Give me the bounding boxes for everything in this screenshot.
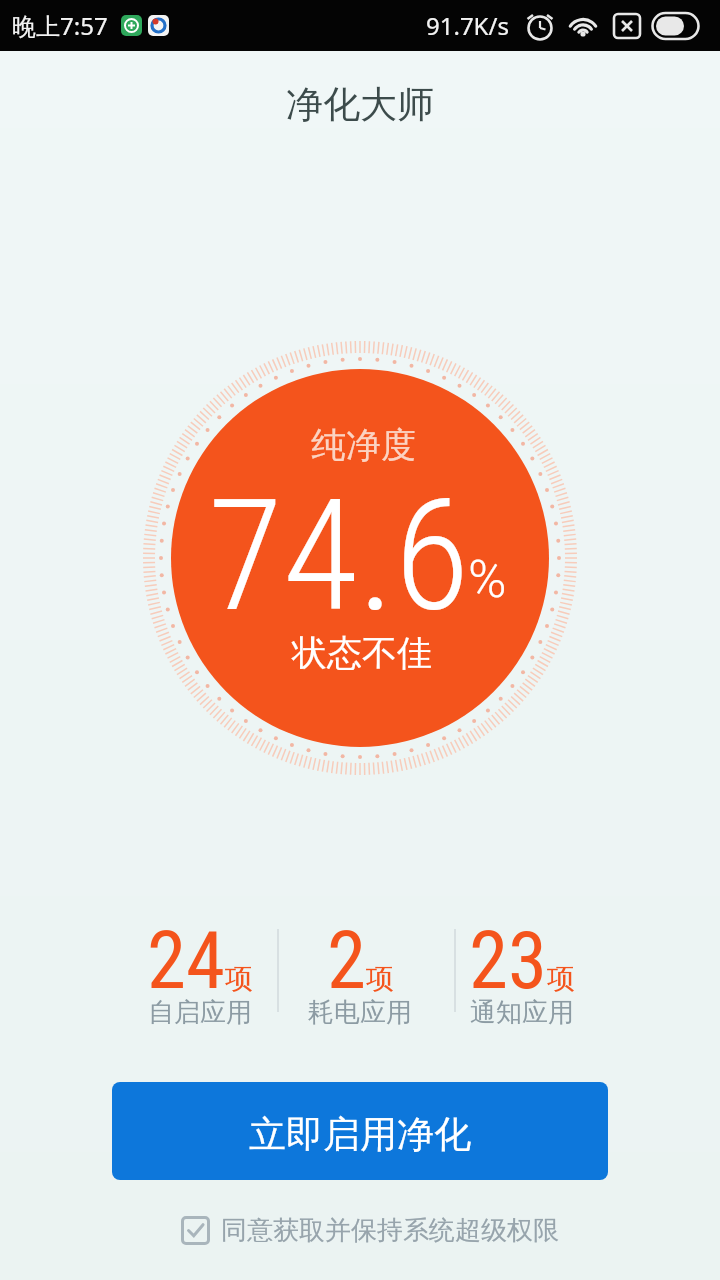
- staticText: 纯净度: [311, 423, 416, 467]
- button[interactable]: [130, 328, 590, 788]
- staticText: %: [468, 549, 507, 610]
- staticText: 自启应用: [148, 996, 252, 1029]
- staticText: 立即启用净化: [249, 1111, 471, 1158]
- staticText: 耗电应用: [308, 996, 412, 1029]
- staticText: 状态不佳: [292, 631, 432, 675]
- staticText: 项: [547, 961, 575, 996]
- button[interactable]: 同意获取并保持系统超级权限: [181, 1214, 559, 1247]
- staticText: 24: [147, 915, 225, 1008]
- staticText: 同意获取并保持系统超级权限: [221, 1214, 559, 1247]
- staticText: 74.6: [208, 466, 470, 646]
- staticText: 项: [225, 961, 253, 996]
- staticText: 23: [469, 915, 547, 1008]
- staticText: 晚上7:57: [12, 9, 108, 42]
- staticText: 通知应用: [470, 996, 574, 1029]
- staticText: 净化大师: [286, 81, 434, 128]
- staticText: 2: [327, 915, 366, 1008]
- staticText: 91.7K/s: [426, 9, 509, 42]
- staticText: 项: [366, 961, 394, 996]
- button[interactable]: 立即启用净化: [112, 1082, 608, 1180]
